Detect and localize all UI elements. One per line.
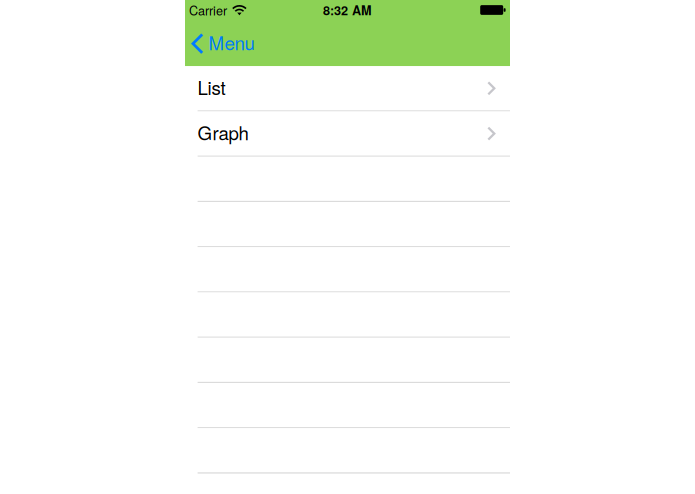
staticText: Carrier (189, 1, 227, 19)
button[interactable]: List (185, 66, 510, 111)
staticText: 8:32 AM (323, 1, 372, 19)
button[interactable]: Menu (185, 20, 263, 66)
button[interactable]: Graph (185, 111, 510, 157)
staticText: List (198, 73, 226, 100)
staticText: Menu (209, 29, 255, 55)
staticText: Graph (198, 119, 249, 145)
